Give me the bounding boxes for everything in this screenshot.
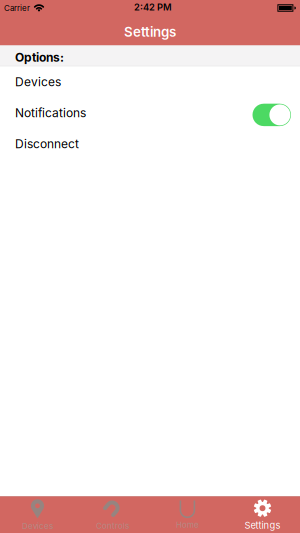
button[interactable]: Settings bbox=[225, 497, 300, 533]
staticText: Disconnect bbox=[15, 137, 79, 151]
staticText: Devices bbox=[15, 75, 61, 89]
staticText: Settings bbox=[244, 520, 280, 531]
button[interactable]: Home bbox=[150, 497, 225, 533]
button[interactable]: Notifications bbox=[252, 104, 291, 126]
staticText: Devices bbox=[22, 521, 53, 531]
staticText: Options: bbox=[15, 50, 64, 64]
staticText: Settings bbox=[124, 24, 176, 40]
staticText: Carrier bbox=[4, 3, 30, 13]
staticText: Notifications bbox=[15, 106, 86, 120]
staticText: Home bbox=[176, 520, 199, 529]
button[interactable]: Devices bbox=[0, 66, 300, 97]
staticText: 2:42 PM bbox=[134, 1, 172, 12]
button[interactable]: Devices bbox=[0, 497, 75, 533]
staticText: Controls bbox=[96, 521, 129, 530]
button[interactable]: Controls bbox=[75, 497, 150, 533]
button[interactable]: Disconnect bbox=[0, 128, 300, 159]
